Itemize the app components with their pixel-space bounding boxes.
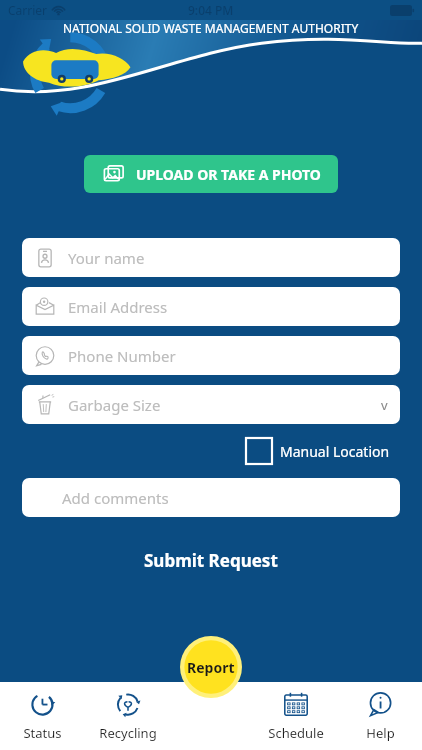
button[interactable]: Report [180, 636, 242, 698]
button[interactable]: Email Address [22, 287, 400, 326]
button[interactable]: Garbage Size [22, 385, 400, 424]
staticText: Schedule [268, 724, 324, 742]
button[interactable]: Help [338, 682, 422, 750]
button[interactable]: Submit Request [126, 543, 296, 578]
staticText: NATIONAL SOLID WASTE MANAGEMENT AUTHORIT… [63, 20, 359, 36]
button[interactable]: Manual Location [246, 438, 390, 464]
staticText: Your name [68, 248, 388, 268]
button[interactable]: Recycling [85, 682, 170, 750]
staticText: Add comments [62, 488, 388, 508]
staticText: 9:04 PM [188, 2, 234, 18]
staticText: Submit Request [144, 549, 278, 572]
staticText: UPLOAD OR TAKE A PHOTO [136, 165, 321, 184]
staticText: Carrier [8, 2, 48, 18]
staticText: Help [366, 724, 395, 742]
staticText: Email Address [68, 297, 388, 317]
button[interactable]: Schedule [254, 682, 338, 750]
staticText: Report [187, 658, 235, 677]
button[interactable]: Status [0, 682, 85, 750]
staticText: Garbage Size [68, 395, 381, 415]
button[interactable]: Add comments [22, 478, 400, 517]
staticText: Phone Number [68, 346, 388, 366]
button[interactable]: Phone Number [22, 336, 400, 375]
button[interactable]: Your name [22, 238, 400, 277]
staticText: v [381, 396, 388, 414]
staticText: Status [23, 724, 62, 742]
button[interactable]: UPLOAD OR TAKE A PHOTO [84, 155, 338, 193]
staticText: Recycling [99, 724, 157, 742]
staticText: Manual Location [280, 442, 390, 461]
